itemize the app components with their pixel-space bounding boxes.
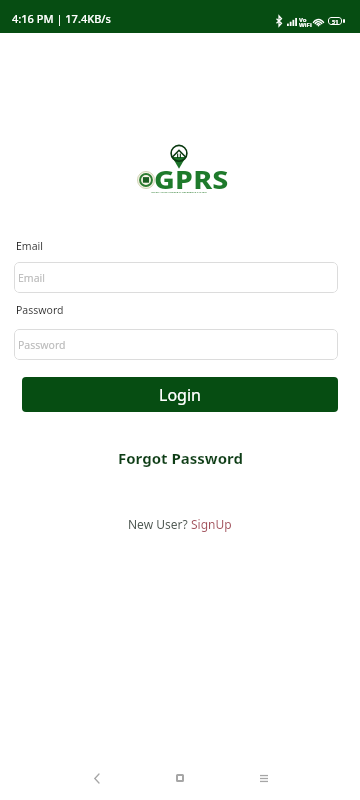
staticText: 51 [332,18,339,25]
staticText: New User? [128,516,191,532]
staticText: Login [159,384,201,406]
staticText: Password [16,303,64,317]
staticText: 4:16 PM | 17.4KB/s [12,11,111,26]
button[interactable]: Email [14,262,338,293]
staticText: GILGIT STATE PROPERTY REFERENCE SYSTEM [119,191,239,194]
button[interactable]: SignUp [191,513,232,535]
staticText: SignUp [191,516,232,532]
staticText: Vo WiFi [299,16,312,29]
staticText: Forgot Password [118,448,243,468]
staticText: GPRS [154,162,229,196]
button[interactable]: Home [158,756,202,800]
button[interactable]: Login [22,377,338,412]
button[interactable]: Back [74,756,118,800]
button[interactable]: Password [14,329,338,360]
button[interactable]: Forgot Password [110,445,251,471]
staticText: Password [18,338,66,352]
staticText: Email [16,239,43,253]
staticText: Email [18,271,45,285]
button[interactable]: Recent apps [242,756,286,800]
